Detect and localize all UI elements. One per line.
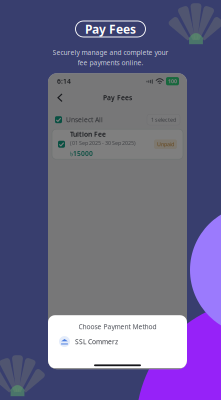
staticText: ৳15000: [70, 149, 93, 159]
staticText: Unselect All: [66, 115, 103, 124]
staticText: (01 Sep 2025 - 30 Sep 2025): [70, 139, 136, 147]
staticText: Securely manage and complete your: [52, 48, 168, 57]
button[interactable]: Back: [54, 91, 66, 105]
staticText: 100: [168, 78, 177, 85]
staticText: fee payments online.: [77, 58, 143, 67]
staticText: 1 selected: [151, 116, 176, 123]
staticText: Choose Payment Method: [78, 322, 156, 331]
staticText: Pay Fees: [85, 21, 136, 37]
staticText: Unpaid: [157, 141, 174, 148]
button[interactable]: Unselect All: [55, 115, 103, 124]
staticText: Tuition Fee: [70, 130, 106, 138]
button[interactable]: SSL Commerz: [48, 331, 187, 352]
staticText: SSL Commerz: [75, 337, 118, 346]
staticText: Pay Fees: [103, 93, 132, 102]
button[interactable]: Tuition Fee: [48, 129, 187, 159]
staticText: 6:14: [57, 77, 71, 86]
button[interactable]: 1 selected: [147, 114, 180, 125]
